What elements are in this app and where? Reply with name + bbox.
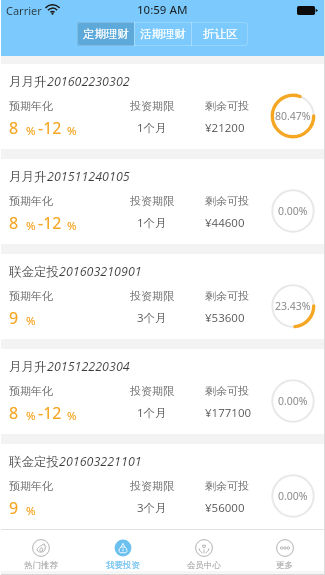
staticText: -12 [38,402,62,424]
button[interactable]: 热门推荐 [0,530,82,571]
staticText: -12 [38,212,62,234]
staticText: 201603221101 [59,453,142,470]
staticText: % [67,218,77,234]
staticText: 活期理财 [140,27,186,41]
button[interactable]: 折让区 [192,22,248,46]
button[interactable]: 会员中心 [163,530,244,571]
button[interactable]: 联金定投 [0,254,325,339]
staticText: 预期年化 [9,479,53,493]
staticText: 1个月 [137,405,167,421]
staticText: 1个月 [137,120,167,136]
staticText: 10:59 AM [137,2,188,18]
staticText: 201602230302 [47,73,130,90]
button[interactable]: 联金定投 [0,444,325,529]
button[interactable]: 定期理财 [77,22,134,46]
staticText: 预期年化 [9,289,53,303]
staticText: 8 [9,402,19,424]
staticText: % [67,123,77,139]
staticText: 80.47% [275,109,311,123]
staticText: 8 [9,212,19,234]
staticText: 剩余可投 [205,384,249,398]
staticText: 1个月 [137,215,167,231]
staticText: 投资期限 [130,289,174,303]
staticText: 投资期限 [130,194,174,208]
staticText: % [26,123,36,139]
staticText: 更多 [276,560,293,571]
staticText: 热门推荐 [24,560,58,571]
staticText: 我要投资 [106,560,140,571]
staticText: 3个月 [137,500,167,516]
staticText: 联金定投 [9,454,59,470]
staticText: 月月升 [9,169,47,185]
staticText: 预期年化 [9,99,53,113]
staticText: % [26,218,36,234]
staticText: 201512220304 [47,358,130,375]
staticText: ¥44600 [205,215,245,231]
button[interactable]: 月月升 [0,64,325,149]
button[interactable]: 更多 [244,530,325,571]
staticText: 月月升 [9,74,47,90]
staticText: Carrier [6,3,42,18]
staticText: 投资期限 [130,479,174,493]
staticText: -12 [38,117,62,139]
staticText: 联金定投 [9,264,59,280]
button[interactable]: 月月升 [0,349,325,434]
staticText: 201511240105 [47,168,130,185]
staticText: 3个月 [137,310,167,326]
staticText: 201603210901 [59,263,142,280]
staticText: % [26,313,36,329]
staticText: % [26,503,36,519]
staticText: 8 [9,117,19,139]
staticText: 定期理财 [83,27,129,41]
staticText: 0.00% [278,489,308,503]
staticText: 月月升 [9,359,47,375]
staticText: ¥177100 [205,405,252,421]
staticText: ¥53600 [205,310,245,326]
button[interactable]: 活期理财 [135,22,191,46]
button[interactable]: 我要投资 [82,530,163,571]
staticText: 23.43% [275,299,311,313]
staticText: 剩余可投 [205,99,249,113]
staticText: 预期年化 [9,384,53,398]
button[interactable]: 月月升 [0,159,325,244]
staticText: ¥21200 [205,120,245,136]
staticText: ¥56000 [205,500,245,516]
staticText: 0.00% [278,204,308,218]
staticText: 预期年化 [9,194,53,208]
staticText: 投资期限 [130,99,174,113]
staticText: 0.00% [278,394,308,408]
staticText: 剩余可投 [205,289,249,303]
staticText: 折让区 [203,27,238,41]
staticText: % [26,408,36,424]
staticText: 剩余可投 [205,479,249,493]
staticText: 9 [9,307,19,329]
staticText: 会员中心 [187,560,221,571]
staticText: 剩余可投 [205,194,249,208]
staticText: 9 [9,497,19,519]
staticText: % [67,408,77,424]
staticText: 投资期限 [130,384,174,398]
